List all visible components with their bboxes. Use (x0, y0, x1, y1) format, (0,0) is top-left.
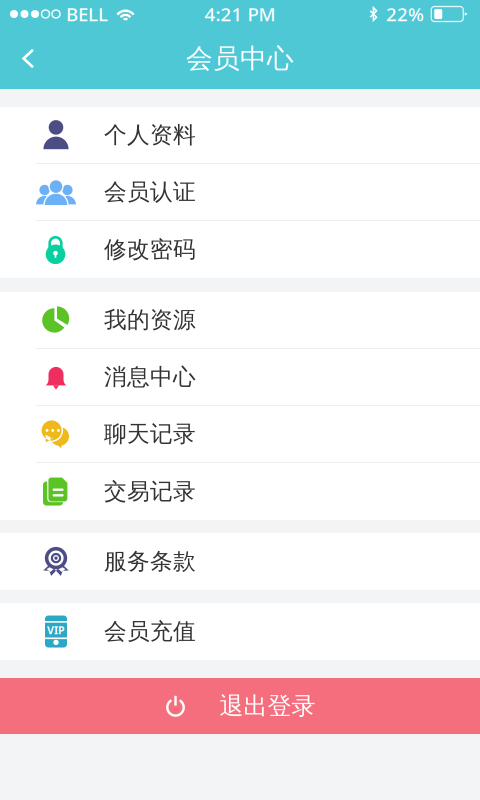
button[interactable]: 服务条款 (0, 533, 480, 590)
button[interactable]: VIP (0, 603, 480, 660)
staticText: 退出登录 (219, 691, 315, 721)
button[interactable]: 聊天记录 (0, 406, 480, 463)
staticText: 个人资料 (104, 121, 196, 149)
button[interactable]: 交易记录 (0, 463, 480, 520)
button[interactable]: 会员认证 (0, 164, 480, 221)
staticText: 会员认证 (104, 178, 196, 206)
staticText: 修改密码 (104, 236, 196, 263)
staticText: 会员中心 (186, 42, 294, 75)
staticText: 聊天记录 (104, 420, 196, 448)
staticText: BELL (66, 2, 108, 26)
staticText: 4:21 PM (204, 2, 275, 26)
button[interactable]: 我的资源 (0, 292, 480, 349)
button[interactable]: 消息中心 (0, 349, 480, 406)
button[interactable]: 个人资料 (0, 107, 480, 164)
staticText: 我的资源 (104, 306, 196, 334)
button[interactable]: 修改密码 (0, 221, 480, 278)
staticText: 消息中心 (104, 363, 196, 391)
staticText: 会员充值 (104, 618, 196, 645)
staticText: 交易记录 (104, 478, 196, 505)
button[interactable]: Back (0, 28, 55, 88)
staticText: 22% (386, 2, 424, 26)
staticText: 服务条款 (104, 548, 196, 575)
staticText: VIP (47, 623, 65, 637)
button[interactable]: 退出登录 (0, 678, 480, 734)
